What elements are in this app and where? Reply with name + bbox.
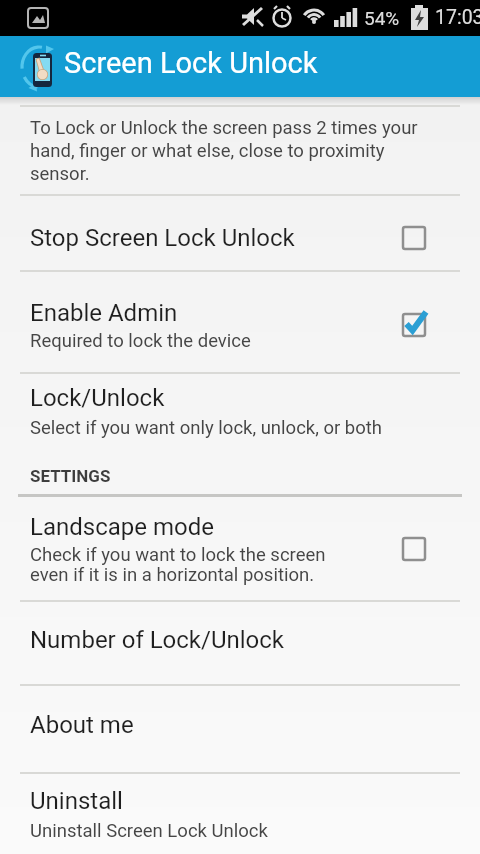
button[interactable]: Uninstall (0, 774, 480, 854)
button[interactable]: To Lock or Unlock the screen pass 2 time… (0, 107, 480, 194)
staticText: Select if you want only lock, unlock, or… (30, 417, 383, 439)
staticText: Required to lock the device (30, 330, 251, 352)
button[interactable]: Enable Admin (0, 272, 480, 372)
staticText: Number of Lock/Unlock (30, 626, 284, 654)
button[interactable]: Lock/Unlock (0, 374, 480, 455)
button[interactable]: About me (0, 686, 480, 772)
button[interactable]: Number of Lock/Unlock (0, 602, 480, 684)
staticText: Enable Admin (30, 299, 178, 327)
button[interactable]: Stop Screen Lock Unlock (0, 196, 480, 270)
staticText: SETTINGS (30, 466, 111, 486)
staticText: Screen Lock Unlock (64, 46, 318, 80)
staticText: Check if you want to lock the screen eve… (30, 544, 326, 585)
staticText: Uninstall Screen Lock Unlock (30, 820, 268, 842)
staticText: 17:03 (435, 6, 480, 29)
staticText: Stop Screen Lock Unlock (30, 224, 295, 252)
button[interactable]: Landscape mode (0, 497, 480, 600)
staticText: About me (30, 711, 134, 739)
staticText: 54% (364, 7, 400, 29)
staticText: Uninstall (30, 787, 123, 815)
staticText: Landscape mode (30, 513, 214, 541)
staticText: To Lock or Unlock the screen pass 2 time… (30, 117, 418, 185)
staticText: Lock/Unlock (30, 384, 165, 412)
